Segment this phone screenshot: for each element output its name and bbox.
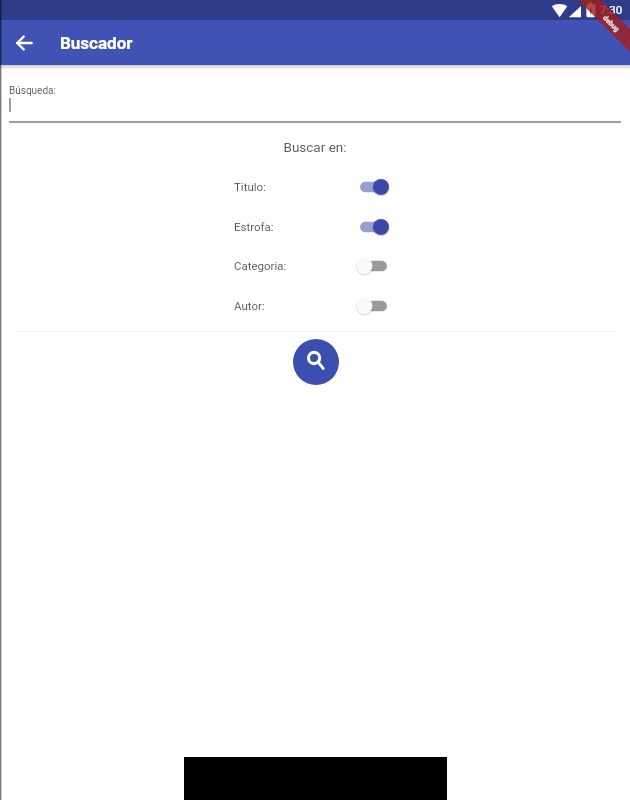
staticText: Titulo: — [234, 180, 266, 193]
staticText: Autor: — [234, 299, 265, 312]
button[interactable]: Búsqueda: — [0, 74, 630, 124]
button[interactable]: Search — [293, 339, 339, 385]
staticText: Buscar en: — [0, 139, 630, 155]
button[interactable]: Autor: — [0, 286, 630, 326]
staticText: Búsqueda: — [9, 85, 56, 97]
button[interactable]: Estrofa: — [0, 207, 630, 247]
button[interactable]: Back — [4, 23, 44, 63]
staticText: Estrofa: — [234, 220, 274, 233]
staticText: Categoria: — [234, 259, 287, 272]
button[interactable]: Titulo: — [0, 167, 630, 207]
staticText: debug — [601, 14, 621, 34]
button[interactable]: Categoria: — [0, 246, 630, 286]
staticText: Buscador — [60, 33, 133, 53]
staticText: 7:30 — [600, 3, 623, 16]
